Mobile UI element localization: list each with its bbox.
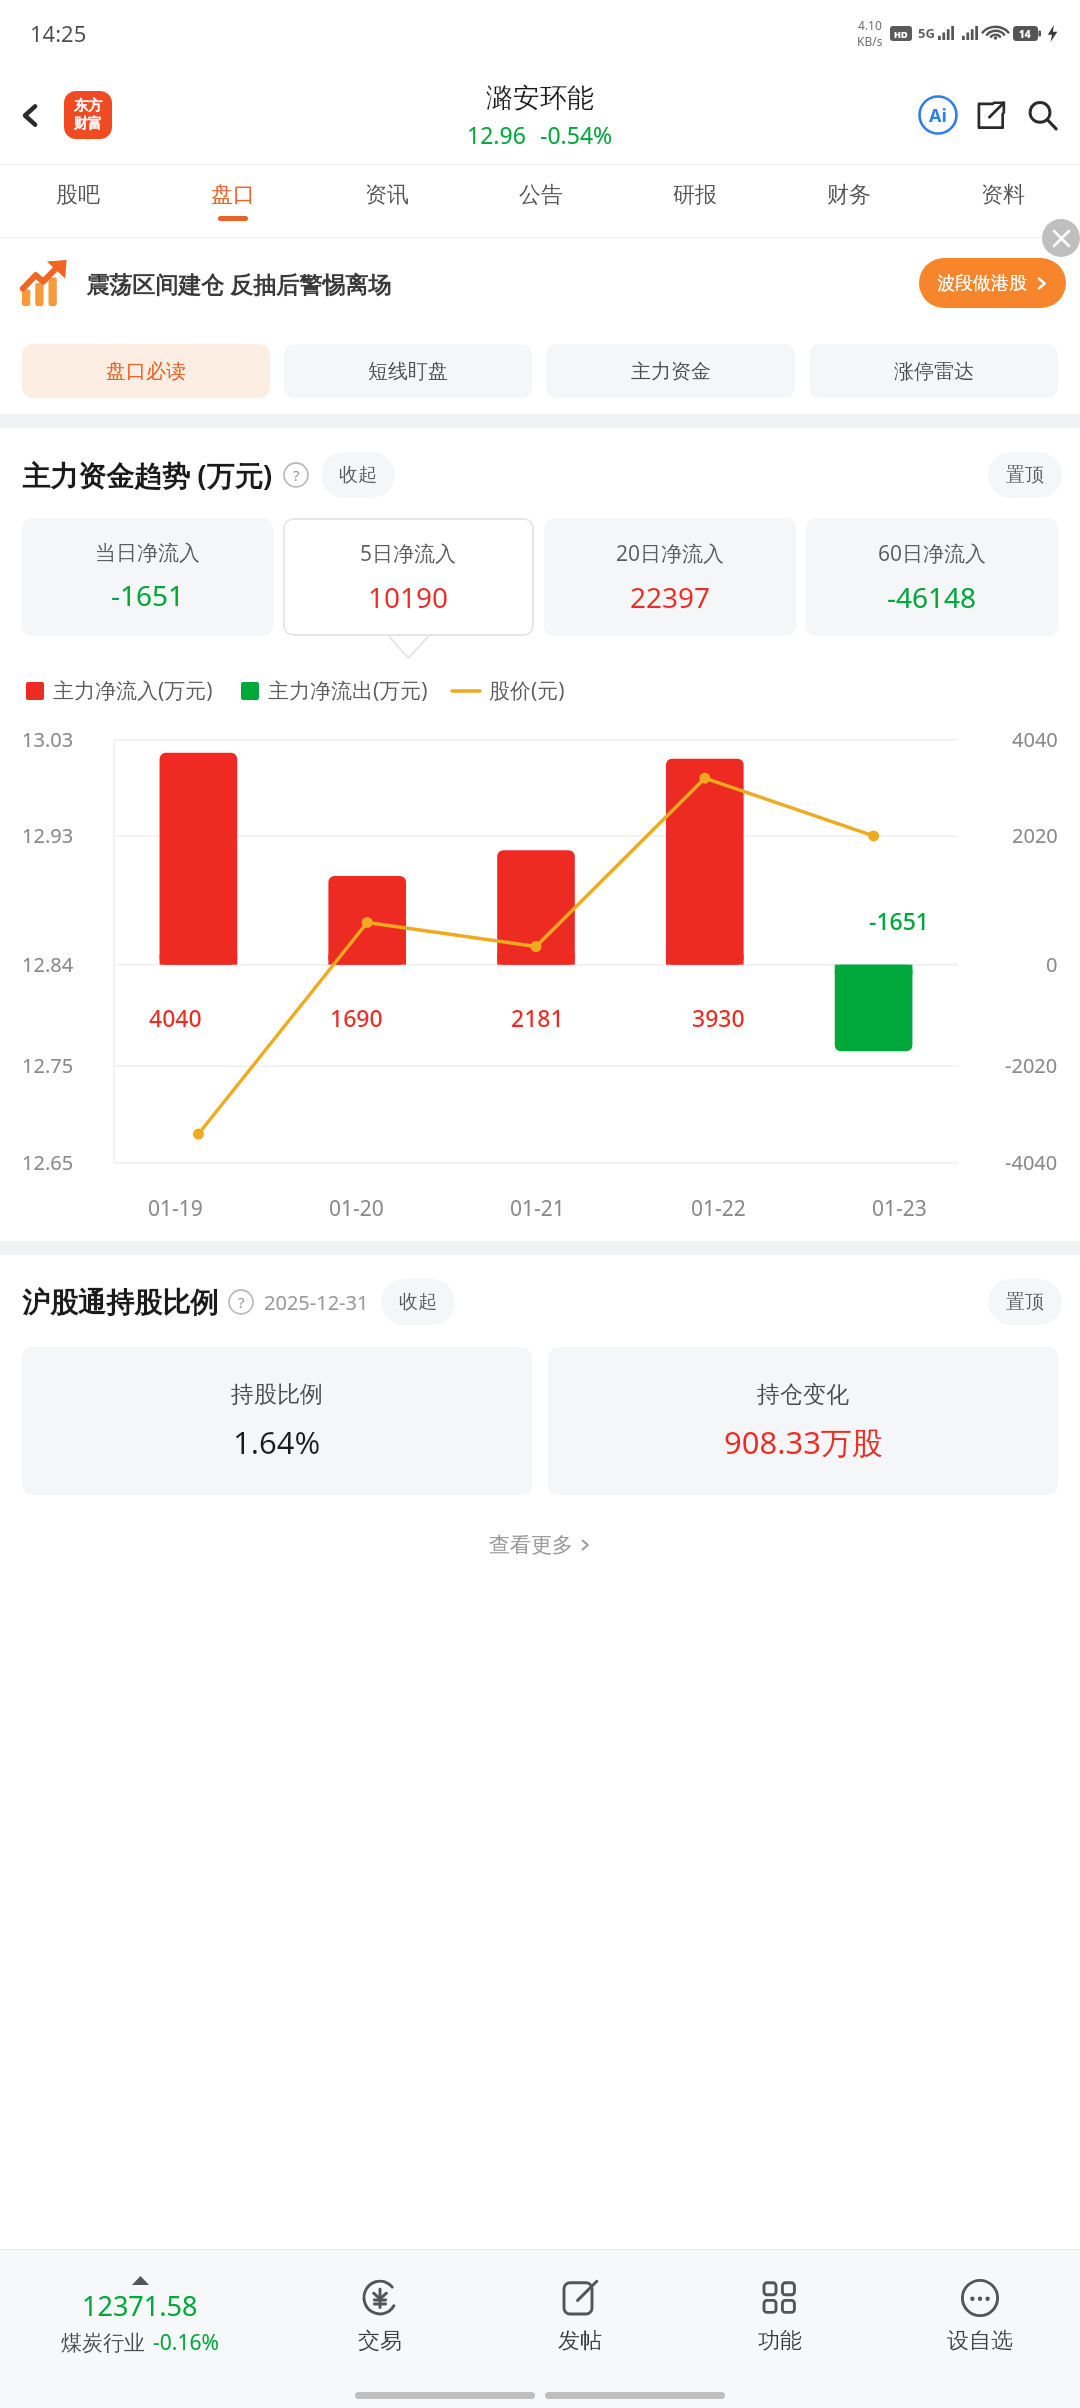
button[interactable]: 设自选 [880,2250,1080,2382]
staticText: 持股比例 [231,1380,323,1409]
staticText: Ai [929,103,947,128]
button[interactable]: 短线盯盘 [284,344,532,398]
staticText: 主力净流出(万元) [268,676,428,705]
staticText: 01-22 [691,1194,746,1223]
staticText: 01-21 [510,1194,565,1223]
button[interactable]: Search [1016,89,1068,141]
staticText: 财富 [74,115,102,133]
staticText: 12.96 [467,119,526,150]
staticText: -2020 [1005,1052,1058,1079]
staticText: 东方 [74,97,102,115]
staticText: 财务 [827,181,871,209]
staticText: 5日净流入 [360,539,457,568]
button[interactable]: 主力资金 [546,344,795,398]
staticText: 20日净流入 [616,539,725,568]
button[interactable]: 东方财富 [64,91,112,139]
staticText: 4040 [149,1002,202,1033]
staticText: 22397 [630,578,711,616]
staticText: 2025-12-31 [264,1289,369,1316]
staticText: -0.16% [153,2328,219,2357]
staticText: 震荡区间建仓 反抽后警惕离场 [86,268,391,299]
staticText: 收起 [339,463,377,487]
button[interactable]: 股吧 [0,165,155,237]
button[interactable]: 波段做港股 [919,258,1066,308]
button[interactable]: 置顶 [988,1279,1062,1325]
staticText: 资讯 [365,181,409,209]
staticText: 4040 [1012,726,1058,753]
button[interactable]: Share [964,89,1016,141]
staticText: 1.64% [233,1421,321,1463]
button[interactable]: 关闭 [1042,219,1080,257]
staticText: 主力资金趋势 (万元) [22,456,273,494]
staticText: 涨停雷达 [894,359,974,384]
button[interactable]: 持股比例 [22,1347,532,1495]
staticText: 盘口必读 [106,359,186,384]
button[interactable]: 资料 [926,165,1080,237]
staticText: -1651 [111,576,185,614]
staticText: 14 [1019,27,1031,41]
staticText: 3930 [692,1002,745,1033]
button[interactable]: 查看更多 [0,1519,1080,1571]
staticText: 股价(元) [489,676,565,705]
staticText: 煤炭行业 [61,2330,145,2356]
staticText: 沪股通持股比例 [22,1285,218,1320]
staticText: 置顶 [1006,1290,1044,1314]
staticText: 持仓变化 [757,1380,849,1409]
staticText: -4040 [1005,1149,1058,1176]
staticText: -1651 [869,905,930,936]
staticText: 4.10 [858,17,882,33]
button[interactable]: 盘口必读 [22,344,270,398]
button[interactable]: 研报 [618,165,772,237]
button[interactable]: 交易 [280,2250,480,2382]
staticText: 12371.58 [82,2287,198,2324]
button[interactable]: 收起 [321,452,395,498]
staticText: 60日净流入 [878,539,987,568]
staticText: ? [238,1292,245,1312]
button[interactable]: 盘口 [155,165,310,237]
staticText: 2181 [511,1002,564,1033]
button[interactable]: 公告 [464,165,618,237]
staticText: 12.65 [22,1149,74,1176]
button[interactable]: 12371.58 [0,2250,280,2382]
staticText: 短线盯盘 [368,359,448,384]
staticText: 设自选 [947,2327,1013,2355]
button[interactable]: 发帖 [480,2250,680,2382]
staticText: 潞安环能 [486,81,594,115]
staticText: 5G [918,24,935,42]
staticText: -46148 [887,578,977,616]
button[interactable]: 涨停雷达 [809,344,1058,398]
staticText: 研报 [673,181,717,209]
staticText: 主力净流入(万元) [53,676,213,705]
staticText: 1690 [330,1002,383,1033]
staticText: 01-20 [329,1194,384,1223]
staticText: 01-19 [148,1194,203,1223]
button[interactable]: AI助手 [912,89,964,141]
staticText: 公告 [519,181,563,209]
staticText: 资料 [981,181,1025,209]
button[interactable]: 5日净流入 [283,518,534,636]
staticText: 交易 [358,2327,402,2355]
staticText: 10190 [368,578,449,616]
button[interactable]: 资讯 [310,165,464,237]
button[interactable]: 持仓变化 [548,1347,1058,1495]
staticText: 当日净流入 [95,540,200,566]
staticText: 14:25 [30,18,87,48]
staticText: 收起 [399,1290,437,1314]
staticText: 查看更多 [489,1532,573,1558]
button[interactable]: Back [0,85,60,145]
staticText: 发帖 [558,2327,602,2355]
staticText: 2020 [1012,822,1058,849]
button[interactable]: 财务 [772,165,926,237]
staticText: 盘口 [211,181,255,209]
staticText: -0.54% [540,119,613,150]
button[interactable]: 20日净流入 [544,518,796,636]
staticText: 908.33万股 [724,1421,883,1463]
staticText: 主力资金 [631,359,711,384]
button[interactable]: 功能 [680,2250,880,2382]
staticText: 13.03 [22,726,74,753]
staticText: 股吧 [56,181,100,209]
button[interactable]: 置顶 [988,452,1062,498]
button[interactable]: 60日净流入 [806,518,1058,636]
button[interactable]: 当日净流入 [22,518,273,636]
button[interactable]: 收起 [381,1279,455,1325]
